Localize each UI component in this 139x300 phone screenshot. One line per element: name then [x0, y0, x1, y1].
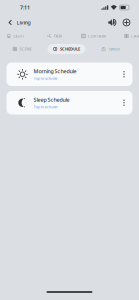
staticText: Sleep Schedule [33, 96, 69, 103]
staticText: CURTAIN [88, 33, 106, 39]
button[interactable]: TIMER [89, 42, 133, 56]
staticText: Tap to activate [33, 75, 57, 81]
staticText: SCENE [20, 46, 32, 52]
staticText: CAM [131, 33, 139, 39]
staticText: 7:11 [20, 4, 30, 11]
button[interactable]: FAN [47, 30, 62, 42]
staticText: SCHEDULE [60, 46, 80, 52]
button[interactable]: Volume [106, 15, 119, 30]
staticText: FAN [54, 33, 62, 39]
staticText: Morning Schedule [33, 68, 76, 75]
staticText: LIGHT [13, 33, 24, 39]
button[interactable]: CURTAIN [81, 30, 106, 42]
button[interactable]: Sleep Schedule [6, 91, 132, 114]
button[interactable]: Add device [119, 15, 134, 30]
button[interactable]: CAM [124, 30, 139, 42]
button[interactable]: SCENE [0, 42, 44, 56]
staticText: Living [16, 19, 30, 26]
button[interactable]: Living [0, 15, 36, 30]
staticText: Tap to activate [33, 104, 57, 109]
button[interactable]: SCHEDULE [44, 42, 89, 56]
button[interactable]: LIGHT [7, 30, 24, 42]
button[interactable]: Morning Schedule [6, 62, 132, 86]
staticText: TIMER [108, 46, 120, 52]
